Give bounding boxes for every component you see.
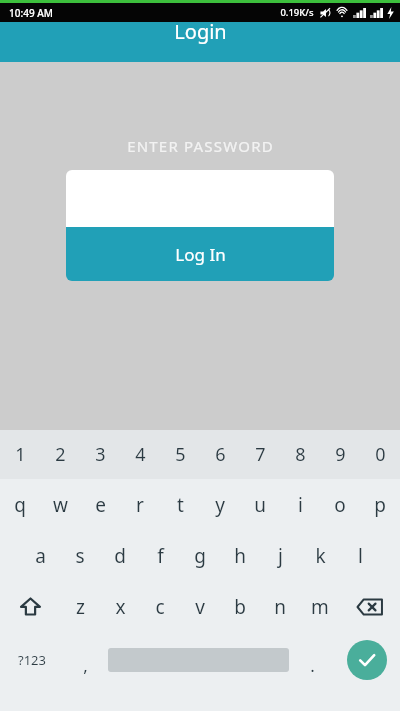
button[interactable]: e (80, 479, 120, 530)
staticText: u (254, 492, 266, 518)
button[interactable]: 6 (200, 430, 240, 479)
staticText: i (298, 492, 303, 518)
staticText: f (157, 543, 164, 569)
staticText: 7 (255, 442, 266, 467)
button[interactable]: k (300, 530, 340, 581)
staticText: h (234, 543, 246, 569)
button[interactable]: 1 (0, 430, 40, 479)
button[interactable]: m (300, 581, 340, 632)
button[interactable]: n (260, 581, 300, 632)
staticText: w (53, 492, 68, 518)
staticText: k (315, 543, 326, 569)
staticText: 1 (15, 442, 26, 467)
button[interactable]: Space (106, 632, 291, 687)
staticText: 0.19K/s (280, 6, 314, 19)
button[interactable]: 9 (320, 430, 360, 479)
staticText: 2 (55, 442, 66, 467)
button[interactable]: p (360, 479, 400, 530)
staticText: 8 (295, 442, 306, 467)
staticText: e (95, 492, 106, 518)
button[interactable]: ?123 (0, 632, 64, 687)
staticText: 6 (215, 442, 226, 467)
button[interactable]: z (60, 581, 100, 632)
staticText: a (35, 543, 46, 569)
staticText: v (195, 594, 205, 620)
button[interactable]: d (100, 530, 140, 581)
staticText: d (114, 543, 126, 569)
staticText: Login (174, 18, 227, 45)
button[interactable]: 2 (40, 430, 80, 479)
button[interactable]: o (320, 479, 360, 530)
staticText: , (83, 654, 88, 677)
button[interactable]: g (180, 530, 220, 581)
staticText: z (76, 594, 85, 620)
staticText: g (194, 543, 206, 569)
staticText: 4 (135, 442, 146, 467)
staticText: x (115, 594, 126, 620)
staticText: t (177, 492, 184, 518)
button[interactable]: q (0, 479, 40, 530)
button[interactable]: , (64, 632, 106, 687)
staticText: 3 (95, 442, 106, 467)
button[interactable]: c (140, 581, 180, 632)
staticText: 0 (375, 442, 386, 467)
button[interactable]: Enter (333, 632, 400, 687)
button[interactable]: Backspace (340, 581, 400, 632)
staticText: c (155, 594, 165, 620)
staticText: m (311, 594, 329, 620)
button[interactable]: l (340, 530, 380, 581)
staticText: r (136, 492, 144, 518)
button[interactable]: 7 (240, 430, 280, 479)
button[interactable]: r (120, 479, 160, 530)
button[interactable]: t (160, 479, 200, 530)
button[interactable]: u (240, 479, 280, 530)
staticText: y (215, 492, 225, 518)
staticText: 5 (175, 442, 186, 467)
button[interactable]: v (180, 581, 220, 632)
staticText: ?123 (18, 651, 46, 669)
button[interactable]: x (100, 581, 140, 632)
button[interactable]: j (260, 530, 300, 581)
staticText: 10:49 AM (9, 6, 53, 20)
staticText: b (234, 594, 246, 620)
button[interactable]: w (40, 479, 80, 530)
button[interactable]: Shift (0, 581, 60, 632)
staticText: 9 (335, 442, 346, 467)
button[interactable]: 0 (360, 430, 400, 479)
staticText: o (334, 492, 346, 518)
button[interactable]: f (140, 530, 180, 581)
staticText: p (374, 492, 386, 518)
staticText: ENTER PASSWORD (127, 136, 274, 156)
button[interactable]: 4 (120, 430, 160, 479)
staticText: q (14, 492, 26, 518)
staticText: j (278, 543, 283, 569)
button[interactable]: Log In (66, 227, 334, 281)
button[interactable]: a (20, 530, 60, 581)
staticText: n (274, 594, 286, 620)
staticText: s (75, 543, 85, 569)
button[interactable]: 5 (160, 430, 200, 479)
button[interactable]: h (220, 530, 260, 581)
button[interactable]: b (220, 581, 260, 632)
button[interactable]: 8 (280, 430, 320, 479)
button[interactable]: y (200, 479, 240, 530)
button[interactable]: i (280, 479, 320, 530)
button[interactable]: . (291, 632, 333, 687)
button[interactable]: s (60, 530, 100, 581)
staticText: l (358, 543, 363, 569)
staticText: . (310, 654, 315, 677)
button[interactable]: 3 (80, 430, 120, 479)
staticText: Log In (175, 243, 226, 266)
